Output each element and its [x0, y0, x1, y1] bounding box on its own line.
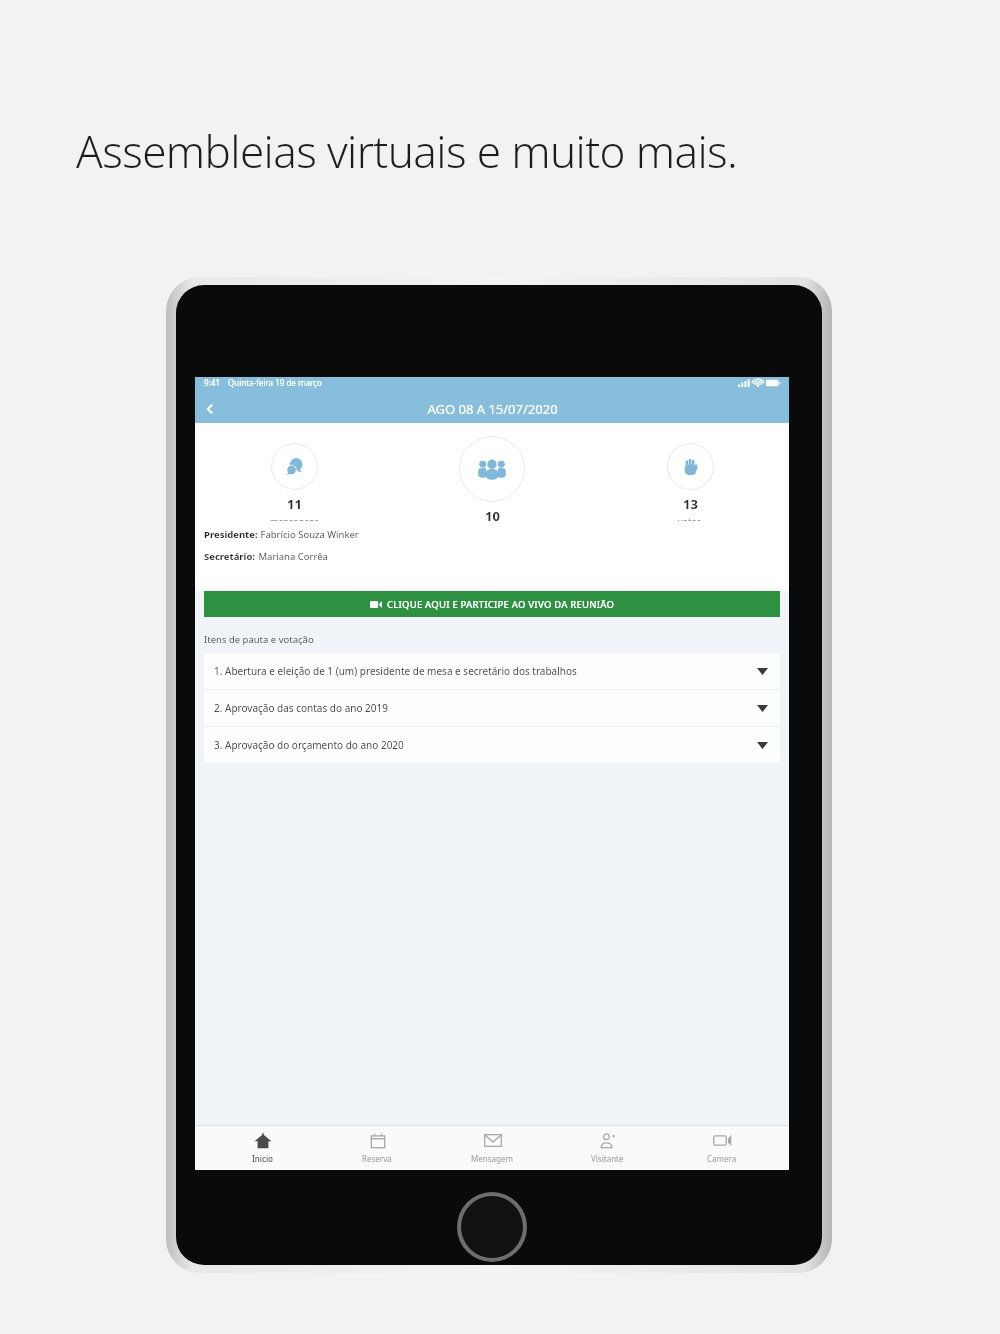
staticText: Mensagem [471, 1153, 513, 1164]
button[interactable]: 10 [393, 436, 591, 521]
staticText: Inicio [252, 1153, 273, 1164]
button[interactable]: Reserva [329, 1131, 425, 1164]
button[interactable]: Back [195, 394, 225, 423]
staticText: 1. Abertura e eleição de 1 (um) presiden… [214, 664, 577, 678]
staticText: Secretário: [204, 550, 256, 563]
button[interactable]: Camera [674, 1131, 770, 1164]
button[interactable]: Visitante [559, 1131, 655, 1164]
staticText: Itens de pauta e votação [204, 633, 314, 646]
button[interactable]: Home [457, 1192, 527, 1262]
staticText: mensagens [270, 515, 319, 521]
staticText: 10 [485, 507, 500, 521]
staticText: 9:41 [204, 377, 220, 388]
button[interactable]: 3. Aprovação do orçamento do ano 2020 [204, 727, 780, 763]
button[interactable]: Inicio [214, 1131, 310, 1164]
button[interactable]: 13 [591, 436, 789, 521]
staticText: AGO 08 A 15/07/2020 [427, 400, 558, 418]
staticText: Quinta-feira 19 de março [228, 377, 322, 388]
staticText: Visitante [591, 1153, 624, 1164]
staticText: Presidente: [204, 528, 258, 541]
staticText: votos [678, 515, 702, 521]
staticText: 3. Aprovação do orçamento do ano 2020 [214, 738, 404, 752]
staticText: Camera [707, 1153, 737, 1164]
button[interactable]: 1. Abertura e eleição de 1 (um) presiden… [204, 653, 780, 689]
staticText: CLIQUE AQUI E PARTICIPE AO VIVO DA REUNI… [387, 598, 615, 611]
staticText: 13 [683, 495, 698, 513]
staticText: Assembleias virtuais e muito mais. [76, 121, 738, 181]
staticText: Mariana Corrêa [256, 550, 328, 563]
button[interactable]: Mensagem [444, 1131, 540, 1164]
staticText: Fabrício Souza Winker [258, 528, 359, 541]
button[interactable]: CLIQUE AQUI E PARTICIPE AO VIVO DA REUNI… [204, 591, 780, 617]
staticText: 2. Aprovação das contas do ano 2019 [214, 701, 388, 715]
button[interactable]: 2. Aprovação das contas do ano 2019 [204, 690, 780, 726]
staticText: Reserva [362, 1153, 392, 1164]
staticText: 11 [287, 495, 302, 513]
button[interactable]: 11 [195, 436, 393, 521]
